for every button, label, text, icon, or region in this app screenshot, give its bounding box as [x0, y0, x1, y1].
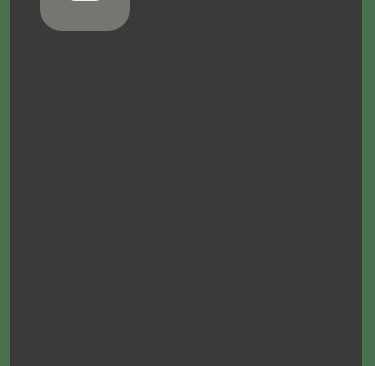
button[interactable]: Open item — [40, 0, 130, 31]
